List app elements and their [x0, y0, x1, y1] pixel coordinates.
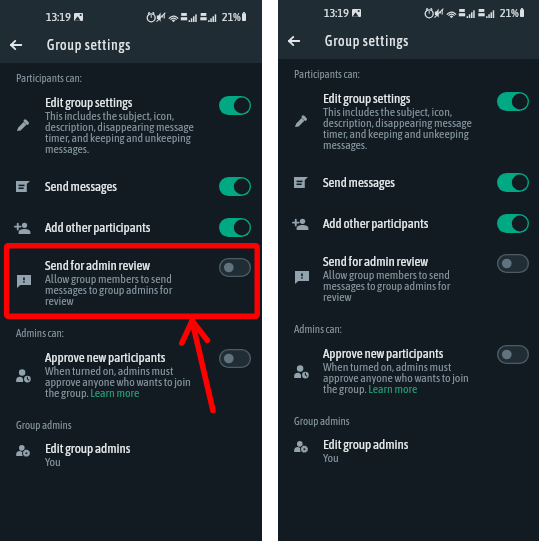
staticText: You — [323, 451, 339, 465]
button[interactable]: Back — [282, 33, 306, 57]
staticText: Group settings — [325, 33, 409, 49]
staticText: Group settings — [47, 37, 131, 53]
staticText: Allow group members to send messages to … — [45, 272, 197, 308]
button[interactable] — [0, 432, 262, 472]
staticText: Group admins — [294, 415, 350, 427]
staticText: Participants can: — [294, 68, 360, 80]
button[interactable] — [278, 205, 539, 237]
staticText: Approve new participants — [45, 349, 166, 364]
button[interactable] — [278, 245, 539, 307]
button[interactable]: Turn on — [497, 254, 529, 273]
staticText: Add other participants — [323, 215, 429, 230]
button[interactable]: Back — [4, 33, 28, 57]
staticText: Edit group settings — [323, 90, 411, 105]
staticText: Add other participants — [45, 219, 151, 234]
button[interactable] — [0, 209, 262, 241]
staticText: Send messages — [323, 174, 395, 189]
button[interactable] — [0, 249, 262, 311]
button[interactable]: Turn on — [219, 349, 251, 368]
button[interactable]: Turn off — [497, 92, 529, 111]
staticText: When turned on, admins must approve anyo… — [45, 364, 197, 400]
button[interactable]: Turn off — [219, 96, 251, 115]
staticText: Allow group members to send messages to … — [323, 268, 475, 304]
staticText: 21% — [500, 6, 519, 20]
button[interactable] — [278, 82, 539, 156]
button[interactable] — [278, 164, 539, 196]
button[interactable]: Turn on — [497, 345, 529, 364]
staticText: You — [45, 455, 61, 469]
button[interactable]: Turn off — [497, 173, 529, 192]
staticText: Admins can: — [16, 327, 64, 339]
staticText: Edit group settings — [45, 94, 133, 109]
staticText: This includes the subject, icon, descrip… — [323, 105, 475, 152]
staticText: 13:19 — [46, 10, 71, 24]
staticText: Send for admin review — [45, 257, 151, 272]
staticText: Send for admin review — [323, 253, 429, 268]
staticText: Edit group admins — [323, 436, 409, 451]
button[interactable] — [0, 86, 262, 160]
staticText: 21% — [222, 10, 241, 24]
button[interactable]: Turn off — [497, 214, 529, 233]
button[interactable]: Turn off — [219, 177, 251, 196]
staticText: When turned on, admins must approve anyo… — [323, 360, 475, 396]
button[interactable]: Turn off — [219, 218, 251, 237]
staticText: This includes the subject, icon, descrip… — [45, 109, 197, 156]
staticText: Approve new participants — [323, 345, 444, 360]
staticText: 13:19 — [324, 6, 349, 20]
button[interactable]: Turn on — [219, 258, 251, 277]
staticText: Participants can: — [16, 72, 82, 84]
staticText: Admins can: — [294, 323, 342, 335]
button[interactable] — [278, 428, 539, 468]
button[interactable] — [278, 337, 539, 399]
button[interactable] — [0, 168, 262, 200]
button[interactable] — [0, 341, 262, 403]
staticText: Edit group admins — [45, 440, 131, 455]
staticText: Send messages — [45, 178, 117, 193]
staticText: Group admins — [16, 419, 72, 431]
